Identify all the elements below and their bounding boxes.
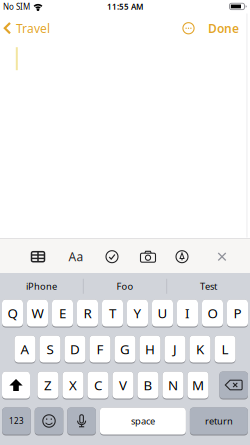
- staticText: No SIM: [3, 1, 30, 12]
- staticText: G: [120, 340, 130, 358]
- button[interactable]: B: [137, 371, 158, 399]
- button[interactable]: J: [164, 335, 185, 363]
- button[interactable]: return: [190, 407, 248, 435]
- button[interactable]: R: [77, 299, 98, 327]
- button[interactable]: Foo: [84, 273, 166, 299]
- staticText: T: [109, 304, 116, 322]
- staticText: E: [59, 304, 66, 322]
- staticText: Aa: [68, 249, 83, 265]
- button[interactable]: Y: [127, 299, 148, 327]
- staticText: S: [46, 340, 53, 358]
- staticText: W: [31, 304, 43, 322]
- staticText: 11:55 AM: [107, 1, 143, 12]
- staticText: Test: [200, 280, 217, 292]
- button[interactable]: N: [162, 371, 183, 399]
- staticText: U: [157, 304, 167, 322]
- staticText: Foo: [116, 280, 133, 292]
- staticText: return: [205, 415, 233, 427]
- staticText: P: [233, 304, 241, 322]
- button[interactable]: [219, 371, 248, 399]
- staticText: K: [196, 340, 204, 358]
- button[interactable]: [105, 250, 119, 264]
- button[interactable]: [35, 407, 63, 435]
- button[interactable]: G: [114, 335, 135, 363]
- button[interactable]: D: [64, 335, 85, 363]
- staticText: iPhone: [26, 280, 57, 292]
- button[interactable]: [2, 371, 30, 399]
- button[interactable]: I: [177, 299, 198, 327]
- staticText: J: [173, 340, 177, 358]
- button[interactable]: L: [214, 335, 235, 363]
- staticText: 123: [9, 416, 24, 426]
- staticText: Z: [44, 376, 52, 394]
- staticText: A: [20, 340, 29, 358]
- staticText: M: [192, 376, 204, 394]
- button[interactable]: E: [52, 299, 73, 327]
- staticText: R: [83, 304, 91, 322]
- staticText: N: [168, 376, 178, 394]
- button[interactable]: 123: [2, 407, 31, 435]
- staticText: B: [143, 376, 152, 394]
- button[interactable]: [67, 407, 96, 435]
- button[interactable]: Z: [37, 371, 58, 399]
- staticText: O: [207, 304, 217, 322]
- staticText: Done: [208, 20, 239, 36]
- button[interactable]: C: [87, 371, 108, 399]
- staticText: V: [119, 376, 127, 394]
- button[interactable]: [217, 251, 227, 262]
- button[interactable]: T: [102, 299, 123, 327]
- button[interactable]: K: [189, 335, 210, 363]
- button[interactable]: H: [139, 335, 160, 363]
- button[interactable]: M: [187, 371, 208, 399]
- staticText: space: [131, 415, 155, 427]
- button[interactable]: W: [27, 299, 48, 327]
- staticText: L: [221, 340, 228, 358]
- button[interactable]: [30, 251, 45, 263]
- staticText: Y: [133, 304, 141, 322]
- button[interactable]: X: [62, 371, 83, 399]
- button[interactable]: V: [112, 371, 133, 399]
- staticText: F: [96, 340, 103, 358]
- button[interactable]: Q: [2, 299, 23, 327]
- button[interactable]: [175, 250, 189, 264]
- button[interactable]: Travel: [0, 20, 50, 36]
- staticText: D: [70, 340, 80, 358]
- staticText: X: [69, 376, 77, 394]
- button[interactable]: A: [14, 335, 35, 363]
- button[interactable]: U: [152, 299, 173, 327]
- button[interactable]: S: [39, 335, 60, 363]
- staticText: I: [185, 304, 190, 322]
- staticText: H: [145, 340, 155, 358]
- button[interactable]: F: [89, 335, 110, 363]
- button[interactable]: Aa: [68, 249, 83, 265]
- button[interactable]: iPhone: [0, 273, 83, 299]
- staticText: C: [94, 376, 102, 394]
- staticText: Travel: [16, 20, 50, 36]
- button[interactable]: Done: [208, 20, 239, 36]
- button[interactable]: P: [227, 299, 248, 327]
- staticText: Q: [7, 304, 17, 322]
- button[interactable]: space: [100, 407, 186, 435]
- button[interactable]: Test: [167, 273, 250, 299]
- button[interactable]: [182, 22, 195, 35]
- button[interactable]: [139, 250, 156, 264]
- button[interactable]: O: [202, 299, 223, 327]
